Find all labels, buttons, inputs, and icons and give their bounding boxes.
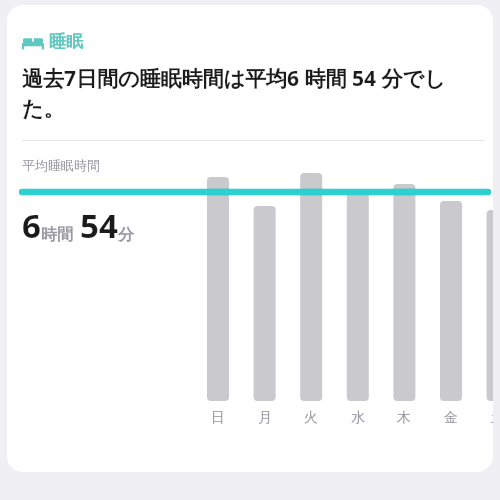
button[interactable]: 土 xyxy=(483,409,493,427)
staticText: 6 xyxy=(22,203,41,248)
button[interactable]: 6 xyxy=(22,203,134,248)
button[interactable]: 火 xyxy=(296,409,326,427)
staticText: 過去7日間の睡眠時間は平均6 時間 54 分でした。 xyxy=(22,64,483,123)
staticText: 日 xyxy=(211,409,225,427)
staticText: 土 xyxy=(491,409,493,427)
staticText: 月 xyxy=(258,409,272,427)
staticText: 金 xyxy=(444,409,458,427)
button[interactable]: 日 xyxy=(203,409,233,427)
button[interactable]: 月 xyxy=(250,409,280,427)
other: Sleep xyxy=(22,34,44,50)
staticText: 平均睡眠時間 xyxy=(22,157,100,173)
button[interactable]: 水 xyxy=(343,409,373,427)
staticText: 火 xyxy=(304,409,318,427)
staticText: 分 xyxy=(118,225,134,245)
staticText: 54 xyxy=(80,203,118,248)
staticText: 木 xyxy=(397,409,411,427)
button[interactable]: 金 xyxy=(436,409,466,427)
button[interactable]: 木 xyxy=(389,409,419,427)
button[interactable]: Sleep xyxy=(22,31,83,52)
staticText: 時間 xyxy=(41,225,73,245)
staticText: 睡眠 xyxy=(49,31,83,52)
staticText: 水 xyxy=(351,409,365,427)
